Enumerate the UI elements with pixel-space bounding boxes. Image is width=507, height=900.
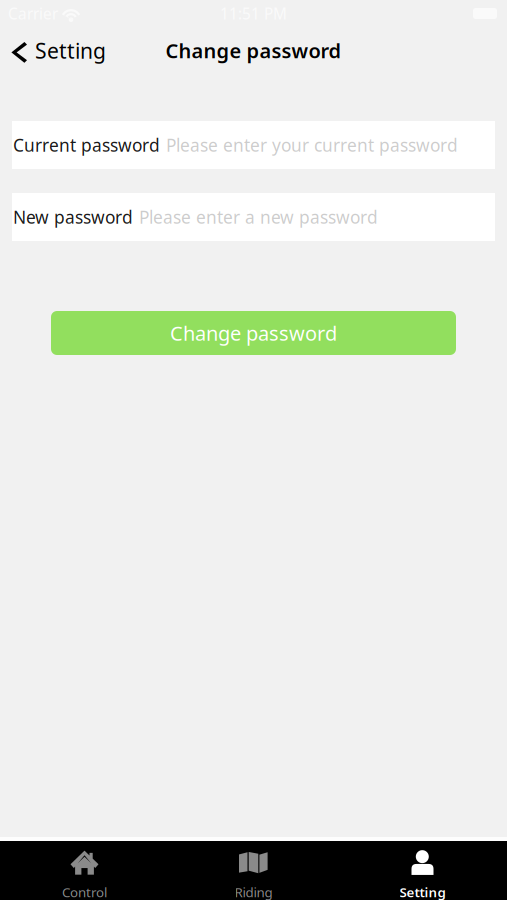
- staticText: Setting: [399, 883, 445, 900]
- staticText: Riding: [234, 883, 272, 900]
- staticText: Please enter your current password: [166, 133, 458, 156]
- staticText: Current password: [13, 133, 160, 156]
- button[interactable]: Change password: [51, 311, 456, 355]
- button[interactable]: Riding: [169, 841, 338, 900]
- button[interactable]: Setting: [0, 28, 120, 72]
- staticText: Change password: [170, 320, 337, 346]
- staticText: Change password: [165, 37, 341, 64]
- button[interactable]: Current password: [12, 121, 495, 169]
- staticText: New password: [13, 205, 133, 228]
- staticText: Control: [62, 883, 107, 900]
- button[interactable]: Control: [0, 841, 169, 900]
- button[interactable]: New password: [12, 193, 495, 241]
- staticText: Please enter a new password: [139, 205, 378, 228]
- staticText: Setting: [35, 36, 106, 65]
- button[interactable]: Setting: [338, 841, 507, 900]
